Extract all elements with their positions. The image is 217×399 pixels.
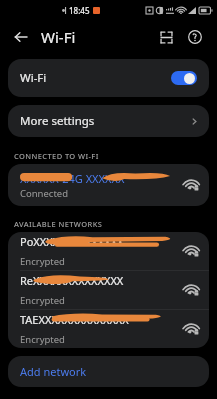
button[interactable] <box>171 71 197 85</box>
button[interactable]: Wi-Fi <box>8 59 209 97</box>
button[interactable]: XXXXXX-24G XXXXXX <box>8 164 209 206</box>
staticText: Wi-Fi <box>41 27 76 47</box>
staticText: TAEXXXXXXXXXXXXXX <box>20 312 129 327</box>
staticText: Wi-Fi <box>20 70 47 86</box>
staticText: ReXXXXXXXXXXXXXX <box>20 273 124 288</box>
staticText: XXXXXX-24G XXXXXX <box>20 171 125 186</box>
staticText: PoXXXXXXXXXXXXXX <box>20 234 124 249</box>
staticText: Add network <box>20 364 87 379</box>
button[interactable]: Scan QR code <box>153 24 179 50</box>
button[interactable]: ReXXXXXXXXXXXXXX <box>8 271 209 309</box>
staticText: Connected <box>20 187 69 200</box>
button[interactable]: Back <box>9 25 33 49</box>
staticText: Encrypted <box>20 333 65 346</box>
staticText: AVAILABLE NETWORKS <box>14 219 103 229</box>
button[interactable]: Help <box>182 24 208 50</box>
staticText: 18:45 <box>69 5 90 16</box>
staticText: Encrypted <box>20 255 65 268</box>
button[interactable]: Add network <box>8 356 209 387</box>
button[interactable]: More settings <box>8 105 209 137</box>
staticText: More settings <box>20 113 95 129</box>
staticText: CONNECTED TO WI-FI <box>14 151 99 161</box>
button[interactable]: TAEXXXXXXXXXXXXXX <box>8 310 209 348</box>
button[interactable]: PoXXXXXXXXXXXXXX <box>8 232 209 270</box>
staticText: Encrypted <box>20 294 65 307</box>
